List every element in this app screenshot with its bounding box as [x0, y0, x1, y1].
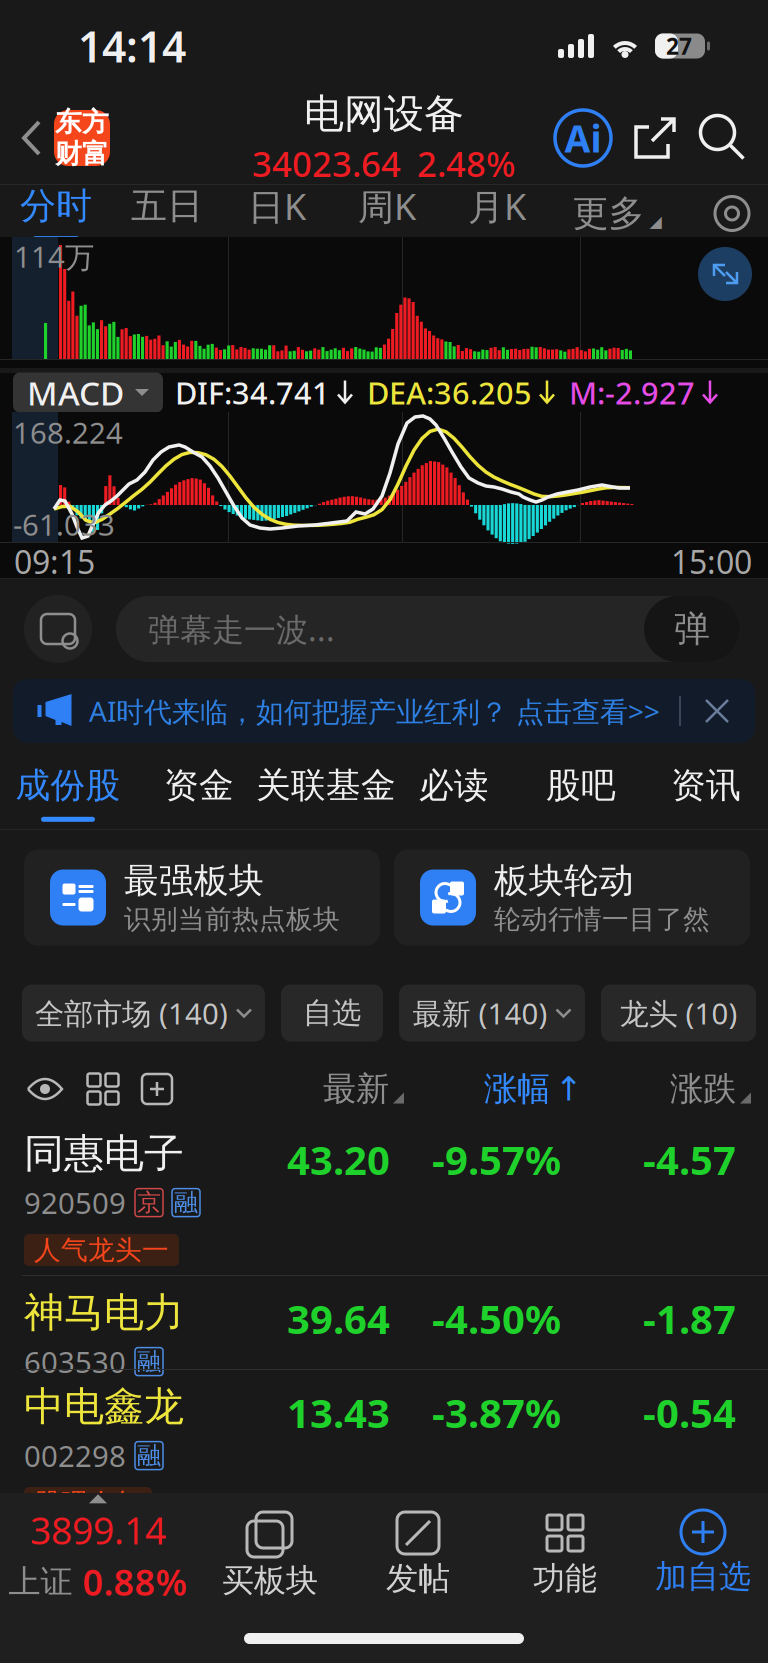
staticText: 09:15 [14, 540, 95, 583]
button[interactable]: 东方财富 [54, 110, 110, 166]
staticText: 002298 [24, 1436, 126, 1475]
button[interactable]: 弹幕走一波... [116, 596, 740, 662]
staticText: 融 [174, 1188, 198, 1217]
staticText: 电网设备 [304, 89, 464, 138]
staticText: 更多 [572, 191, 644, 236]
button[interactable]: 神马电力 [0, 1276, 768, 1370]
button[interactable]: 自选 [281, 984, 383, 1041]
button[interactable]: 涨跌 [678, 1061, 751, 1117]
button[interactable]: 最新 [264, 1061, 404, 1117]
button[interactable]: 股吧 [518, 751, 644, 829]
staticText: 43.20 [287, 1133, 390, 1186]
staticText: -9.57% [432, 1133, 561, 1186]
staticText: 功能 [533, 1559, 597, 1598]
button[interactable]: 搜索 [700, 109, 746, 167]
button[interactable]: 分享 [632, 109, 678, 167]
staticText: 114万 [14, 237, 94, 276]
staticText: 月K [468, 182, 526, 230]
staticText: 39.64 [287, 1292, 390, 1345]
button[interactable]: 弹幕设置 [24, 595, 92, 663]
button[interactable]: 龙头 (10) [601, 984, 756, 1041]
staticText: 识别当前热点板块 [124, 903, 340, 936]
staticText: 神马电力 [24, 1288, 184, 1337]
staticText: ◢ [649, 212, 661, 231]
button[interactable]: 加自选 [638, 1493, 768, 1611]
button[interactable]: 全屏 [698, 247, 752, 301]
staticText: 必读 [419, 764, 489, 807]
staticText: 上证 [8, 1562, 72, 1601]
button[interactable]: 发帖 [344, 1493, 492, 1611]
button[interactable]: 资讯 [644, 751, 768, 829]
button[interactable]: 买板块 [196, 1493, 344, 1611]
staticText: ↑ [555, 1070, 583, 1108]
staticText: 京 [137, 1188, 161, 1217]
staticText: 自选 [303, 995, 361, 1031]
button[interactable]: AI时代来临，如何把握产业红利？ 点击查看>> [13, 679, 755, 743]
staticText: 分时 [20, 184, 92, 228]
button[interactable]: 3899.14 [0, 1493, 196, 1611]
button[interactable]: 涨幅 [504, 1061, 583, 1117]
button[interactable]: 最新 (140) [399, 984, 585, 1041]
button[interactable]: 功能 [492, 1493, 638, 1611]
staticText: 五日 [131, 184, 203, 228]
staticText: -1.87 [643, 1292, 736, 1345]
button[interactable]: 显示设置 [24, 1061, 66, 1117]
staticText: 最新 [323, 1068, 389, 1109]
staticText: 920509 [24, 1183, 126, 1222]
staticText: 加自选 [655, 1557, 751, 1596]
button[interactable]: 网格视图 [84, 1061, 122, 1117]
staticText: 发帖 [386, 1559, 450, 1598]
staticText: 融 [137, 1347, 161, 1376]
staticText: 板块轮动 [494, 859, 634, 902]
button[interactable]: 添加自选 [138, 1061, 176, 1117]
staticText: 0.88% [82, 1558, 187, 1606]
button[interactable]: 板块轮动 [394, 849, 750, 945]
staticText: 日K [248, 182, 306, 230]
button[interactable]: 设置 [696, 185, 768, 242]
button[interactable]: 中电鑫龙 [0, 1370, 768, 1520]
button[interactable]: MACD [13, 372, 163, 412]
button[interactable]: 月K [442, 185, 552, 242]
staticText: 弹幕走一波... [148, 608, 335, 650]
staticText: 13.43 [287, 1386, 390, 1439]
staticText: 中电鑫龙 [24, 1382, 184, 1431]
staticText: 周K [358, 182, 416, 230]
button[interactable]: 必读 [390, 751, 518, 829]
staticText: 成份股 [15, 764, 120, 807]
staticText: 关联基金 [256, 764, 396, 807]
button[interactable]: 返回 [10, 103, 54, 173]
staticText: MACD [27, 370, 124, 415]
staticText: -4.50% [432, 1292, 561, 1345]
button[interactable]: 最强板块 [24, 849, 380, 945]
staticText: 168.224 [13, 413, 123, 452]
button[interactable]: 五日 [112, 185, 222, 242]
button[interactable]: AI 助手 [554, 109, 612, 167]
button[interactable]: 周K [332, 185, 442, 242]
staticText: 最新 (140) [412, 993, 547, 1032]
staticText: -3.87% [432, 1386, 561, 1439]
button[interactable]: 资金 [136, 751, 262, 829]
staticText: M:-2.927 [569, 372, 695, 413]
staticText: -0.54 [643, 1386, 736, 1439]
staticText: 资金 [164, 764, 234, 807]
staticText: 27 [666, 31, 692, 61]
staticText: 3899.14 [30, 1505, 166, 1555]
staticText: 涨幅 [484, 1068, 550, 1109]
button[interactable]: 关联基金 [262, 751, 390, 829]
button[interactable]: 分时 [0, 185, 112, 242]
button[interactable]: 全部市场 (140) [22, 984, 265, 1041]
staticText: 股吧 [546, 764, 616, 807]
staticText: 弹 [674, 607, 710, 651]
staticText: 同惠电子 [24, 1129, 184, 1178]
staticText: 34023.64 [252, 140, 401, 186]
staticText: 14:14 [78, 18, 186, 74]
staticText: 财富 [55, 137, 109, 170]
staticText: DEA:36.205 [367, 372, 532, 413]
button[interactable]: 日K [222, 185, 332, 242]
staticText: 买板块 [222, 1561, 318, 1600]
button[interactable]: 更多 [552, 185, 682, 242]
button[interactable]: 成份股 [0, 751, 136, 829]
button[interactable]: 同惠电子 [0, 1117, 768, 1276]
staticText: 人气龙头一 [34, 1234, 169, 1266]
staticText: 涨跌 [670, 1068, 736, 1109]
